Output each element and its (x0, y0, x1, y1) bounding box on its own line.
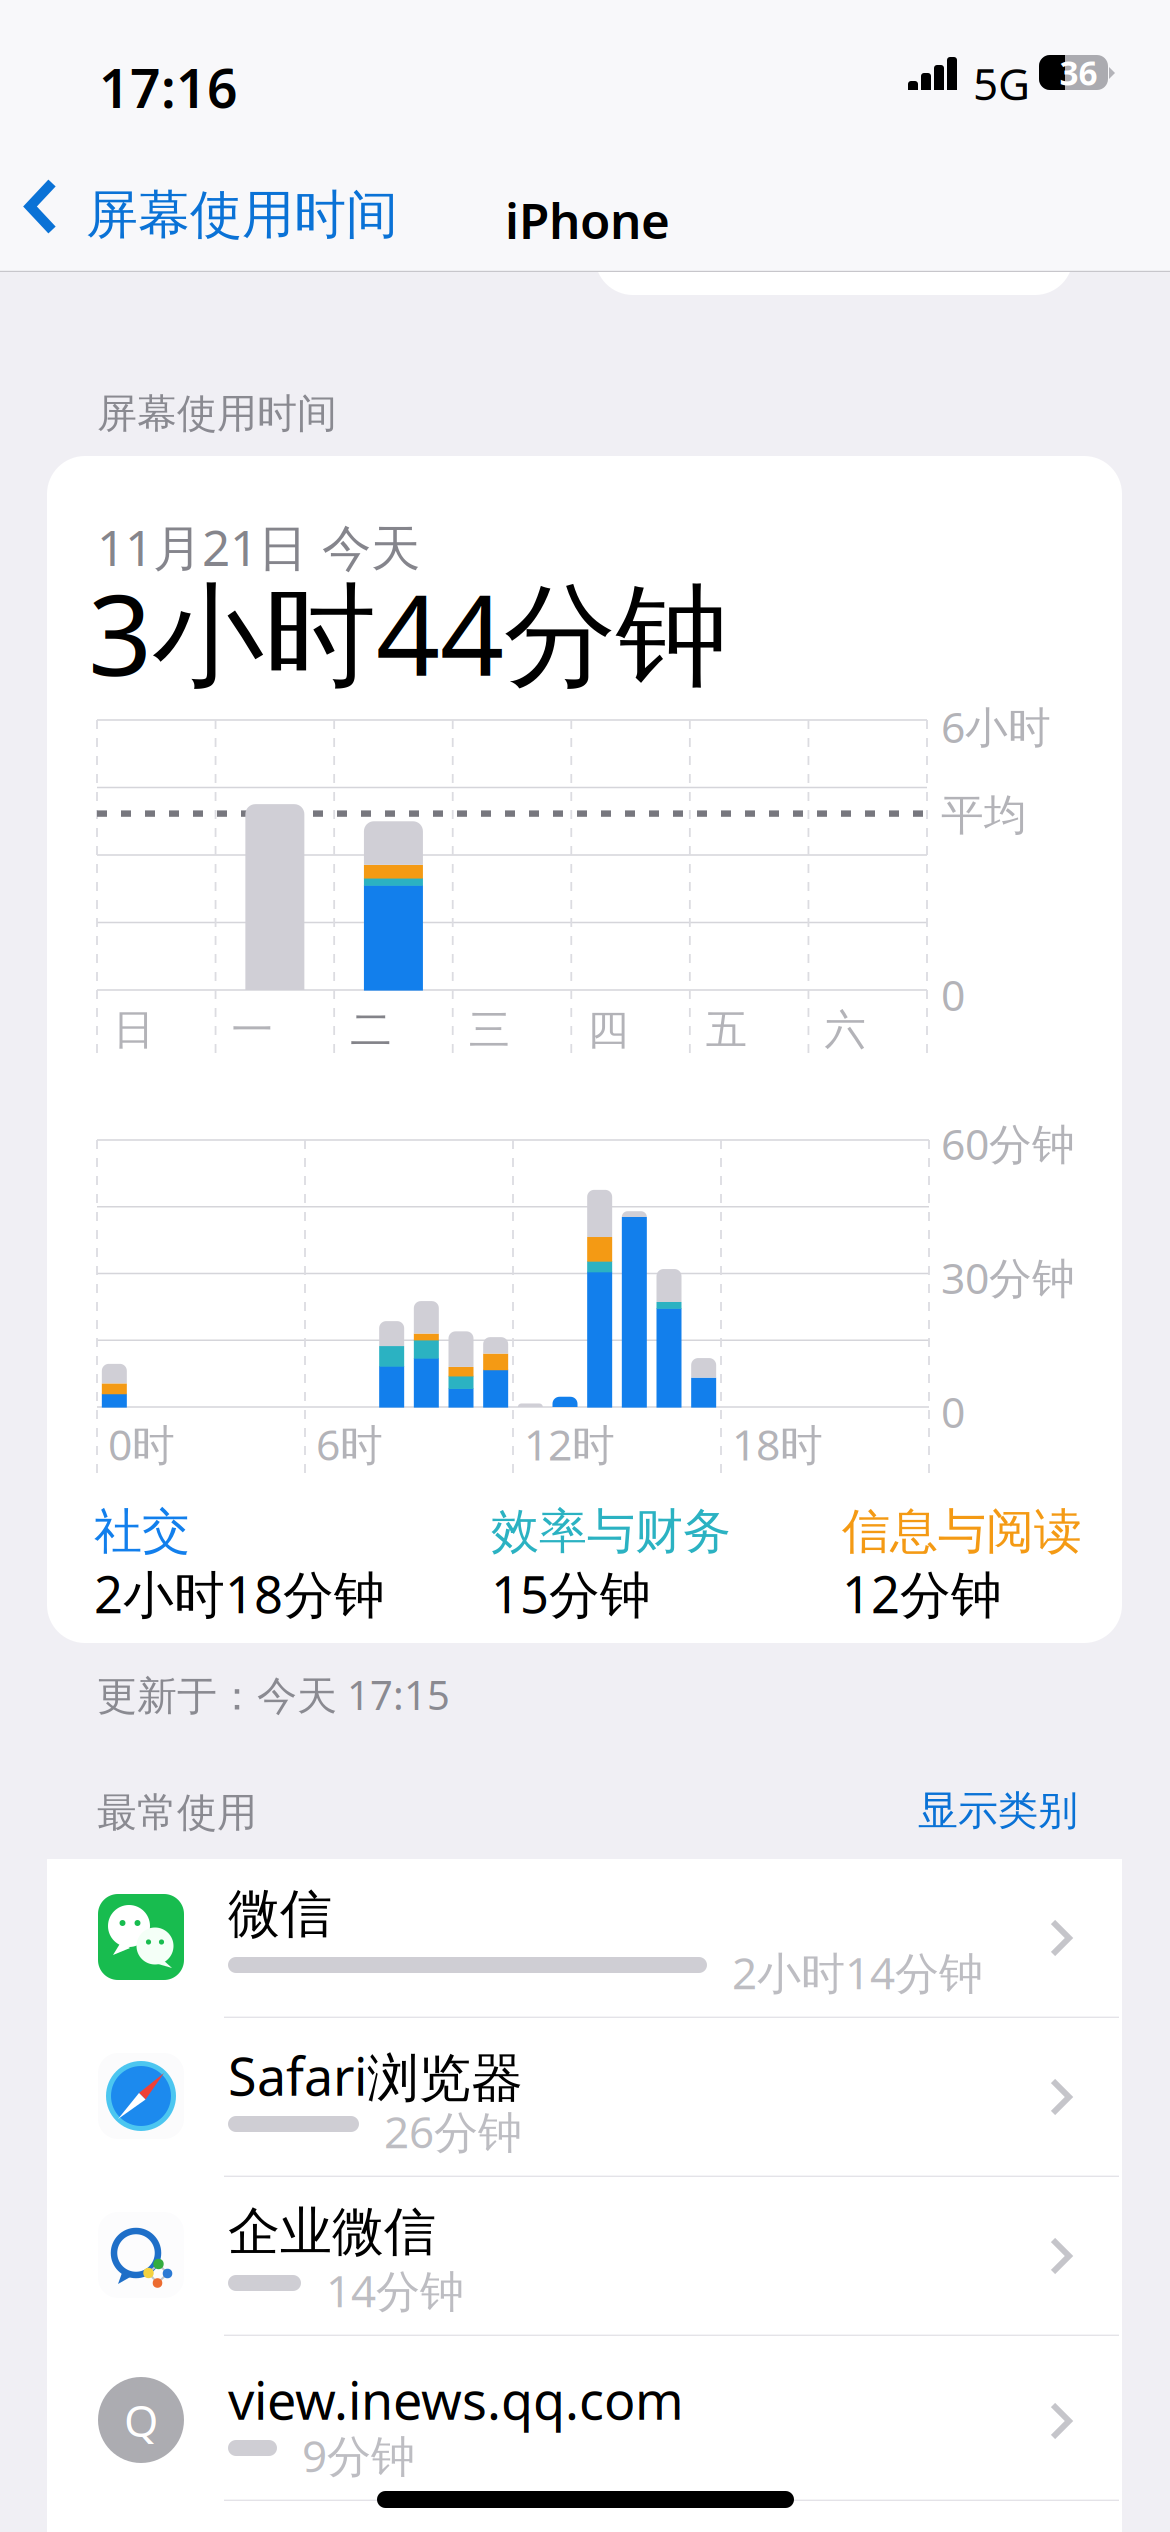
staticText: 14分钟 (326, 2261, 464, 2319)
staticText: 26分钟 (384, 2102, 522, 2160)
button[interactable]: 微信 (47, 1859, 1122, 2018)
staticText: 微信 (228, 1882, 332, 1946)
staticText: 屏幕使用时间 (86, 183, 398, 247)
button[interactable]: 企业微信 (47, 2177, 1122, 2336)
staticText: 信息与阅读 (842, 1502, 1082, 1561)
staticText: 平均 (941, 789, 1027, 841)
button[interactable]: Safari浏览器 (47, 2018, 1122, 2177)
staticText: 0 (941, 966, 965, 1023)
button[interactable]: Q (47, 2342, 1122, 2501)
staticText: 6小时 (941, 698, 1051, 755)
staticText: 3小时44分钟 (88, 558, 728, 707)
staticText: 11月21日 今天 (97, 514, 420, 579)
staticText: 12分钟 (842, 1560, 1002, 1627)
staticText: Q (124, 2391, 158, 2449)
staticText: 显示类别 (918, 1786, 1078, 1835)
staticText: 最常使用 (97, 1788, 257, 1837)
staticText: 更新于：今天 17:15 (97, 1668, 450, 1721)
staticText: 五 (706, 1005, 747, 1055)
staticText: 17:16 (99, 52, 238, 123)
button[interactable]: 屏幕使用时间 (0, 155, 380, 272)
staticText: 2小时18分钟 (94, 1560, 385, 1627)
staticText: 0时 (108, 1416, 175, 1472)
staticText: Safari浏览器 (228, 2041, 523, 2110)
staticText: 六 (824, 1005, 865, 1055)
staticText: 日 (113, 1005, 154, 1055)
staticText: 30分钟 (941, 1249, 1075, 1306)
staticText: 企业微信 (228, 2200, 436, 2264)
staticText: 三 (469, 1005, 510, 1055)
staticText: 60分钟 (941, 1115, 1075, 1172)
staticText: 屏幕使用时间 (97, 389, 337, 438)
staticText: 社交 (94, 1502, 190, 1561)
staticText: 2小时14分钟 (732, 1943, 983, 2001)
staticText: 二 (350, 1005, 391, 1055)
staticText: 效率与财务 (491, 1502, 731, 1561)
staticText: 0 (941, 1383, 965, 1440)
staticText: 12时 (524, 1416, 615, 1472)
staticText: 9分钟 (302, 2426, 415, 2484)
staticText: 6时 (316, 1416, 383, 1472)
staticText: 15分钟 (491, 1560, 651, 1627)
staticText: 四 (587, 1005, 628, 1055)
staticText: 一 (232, 1005, 273, 1055)
staticText: 5G (973, 54, 1030, 112)
staticText: iPhone (505, 187, 670, 252)
staticText: 18时 (732, 1416, 823, 1472)
staticText: 36 (1059, 50, 1097, 95)
staticText: view.inews.qq.com (228, 2365, 684, 2434)
